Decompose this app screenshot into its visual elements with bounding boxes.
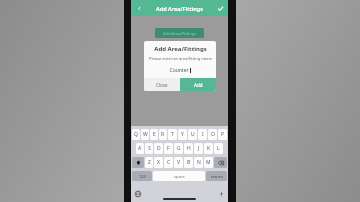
button[interactable]: Add [180,78,216,91]
button[interactable]: Dictation [217,190,225,198]
button[interactable]: K [204,143,213,154]
staticText: X [157,159,160,166]
button[interactable]: A [136,143,144,154]
staticText: B [187,159,191,166]
button[interactable]: Close [144,78,180,91]
button[interactable]: Z [145,157,153,168]
staticText: C [167,159,171,166]
button[interactable]: D [154,143,163,154]
button[interactable]: N [194,157,203,168]
button[interactable]: E [150,129,158,140]
button[interactable]: 123 [132,171,152,181]
button[interactable]: C [164,157,173,168]
staticText: G [177,145,181,152]
staticText: Please enter an area/fitting name [149,56,212,61]
button[interactable]: H [184,143,193,154]
staticText: Add Area/Fittings [163,31,197,36]
button[interactable]: Q [132,129,140,140]
staticText: R [161,131,165,138]
button[interactable]: T [168,129,177,140]
button[interactable]: Y [178,129,187,140]
staticText: H [187,145,191,152]
staticText: Y [181,131,184,138]
button[interactable]: P [218,129,227,140]
staticText: P [221,131,225,138]
staticText: Add [194,82,203,88]
button[interactable]: M [204,157,213,168]
button[interactable]: V [174,157,183,168]
button[interactable]: Confirm [215,3,225,13]
button[interactable]: Back [134,3,144,13]
button[interactable]: G [174,143,183,154]
button[interactable]: R [159,129,167,140]
staticText: J [198,145,200,152]
staticText: Close [156,82,168,88]
button[interactable]: W [141,129,149,140]
button[interactable]: B [184,157,193,168]
button[interactable]: return [206,171,227,181]
button[interactable]: I [198,129,207,140]
button[interactable]: X [154,157,163,168]
button[interactable]: Change keyboard [134,190,142,198]
staticText: 123 [139,174,146,179]
staticText: Z [148,159,151,166]
button[interactable]: O [208,129,217,140]
staticText: Counter [169,67,189,74]
staticText: U [191,131,195,138]
button[interactable]: S [145,143,153,154]
staticText: F [167,145,170,152]
staticText: Add Area/Fittings [154,45,207,53]
staticText: I [202,131,204,138]
staticText: K [207,145,211,152]
button[interactable]: U [188,129,197,140]
staticText: W [143,131,148,138]
button[interactable]: Backspace [214,157,227,168]
staticText: O [211,131,215,138]
button[interactable]: F [164,143,173,154]
staticText: N [197,159,201,166]
staticText: D [157,145,161,152]
staticText: Q [134,131,138,138]
staticText: E [153,131,156,138]
button[interactable]: J [194,143,203,154]
staticText: return [211,174,223,179]
staticText: M [206,159,211,166]
staticText: L [217,145,220,152]
staticText: Add Area/Fittings [156,5,203,12]
staticText: space [174,174,185,179]
staticText: S [148,145,151,152]
staticText: V [177,159,181,166]
button[interactable]: Add Area/Fittings [155,28,204,38]
button[interactable]: Shift [132,157,144,168]
button[interactable]: L [214,143,223,154]
staticText: T [171,131,174,138]
button[interactable]: space [153,171,205,181]
staticText: A [138,145,142,152]
